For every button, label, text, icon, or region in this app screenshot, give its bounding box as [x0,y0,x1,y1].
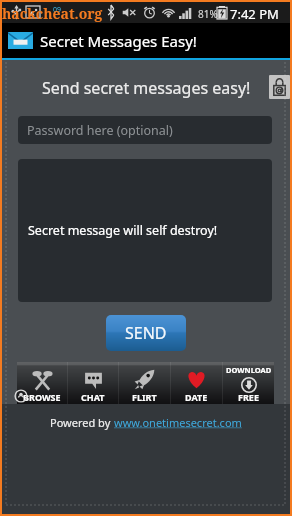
staticText: Password here (optional) [27,122,173,139]
staticText: Secret Messages Easy! [40,31,197,51]
staticText: CHAT [81,391,105,403]
staticText: Secret message will self destroy! [28,222,218,239]
staticText: Powered by [50,415,114,430]
staticText: FLIRT [132,391,157,403]
button[interactable]: SEND [106,315,186,351]
staticText: DATE [185,391,208,403]
staticText: SEND [125,322,167,344]
button[interactable]: CHAT [68,362,118,404]
button[interactable]: Encrypt with password [269,75,290,99]
staticText: DOWNLOAD [226,365,272,375]
staticText: BROWSE [23,391,61,403]
staticText: Send secret messages easy! [42,77,251,99]
staticText: 81% [198,7,218,21]
button[interactable]: Download free [223,362,274,404]
button[interactable]: www.onetimesecret.com [114,415,242,430]
button[interactable]: BROWSE [17,362,67,404]
button[interactable]: Password here (optional) [18,116,272,144]
staticText: 09 [53,5,62,15]
staticText: 7:42 PM [230,5,279,23]
button[interactable]: FLIRT [119,362,170,404]
button[interactable]: Secret message will self destroy! [18,159,272,302]
button[interactable]: DATE [171,362,222,404]
staticText: hackcheat.org [2,4,103,23]
staticText: FREE [238,391,259,403]
